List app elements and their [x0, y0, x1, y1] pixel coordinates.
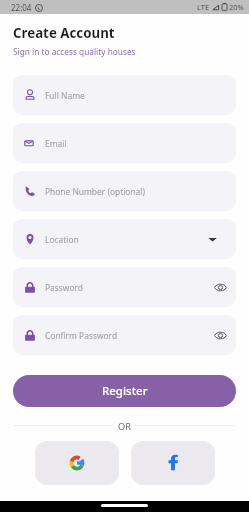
button[interactable]: Sign up with Google	[35, 441, 119, 485]
button[interactable]: Sign up with Facebook	[131, 441, 215, 485]
staticText: Register	[102, 383, 148, 399]
staticText: 22:04	[11, 2, 32, 13]
button[interactable]: Email	[13, 123, 236, 163]
staticText: Full Name	[45, 90, 236, 101]
staticText: LTE	[197, 2, 210, 12]
staticText: OR	[118, 420, 131, 430]
button[interactable]: Location	[13, 219, 236, 259]
staticText: Confirm Password	[45, 330, 214, 341]
button[interactable]: Password	[13, 267, 236, 307]
staticText: Password	[45, 282, 214, 293]
button[interactable]: Full Name	[13, 75, 236, 115]
staticText: Email	[45, 138, 236, 149]
staticText: Sign in to access quality houses	[13, 46, 136, 57]
button[interactable]: Confirm Password	[13, 315, 236, 355]
staticText: Location	[45, 234, 208, 245]
staticText: 20%	[229, 2, 244, 12]
button[interactable]: Register	[13, 375, 236, 407]
staticText: Create Account	[13, 24, 115, 42]
button[interactable]: Phone Number (optional)	[13, 171, 236, 211]
staticText: Phone Number (optional)	[45, 186, 236, 197]
